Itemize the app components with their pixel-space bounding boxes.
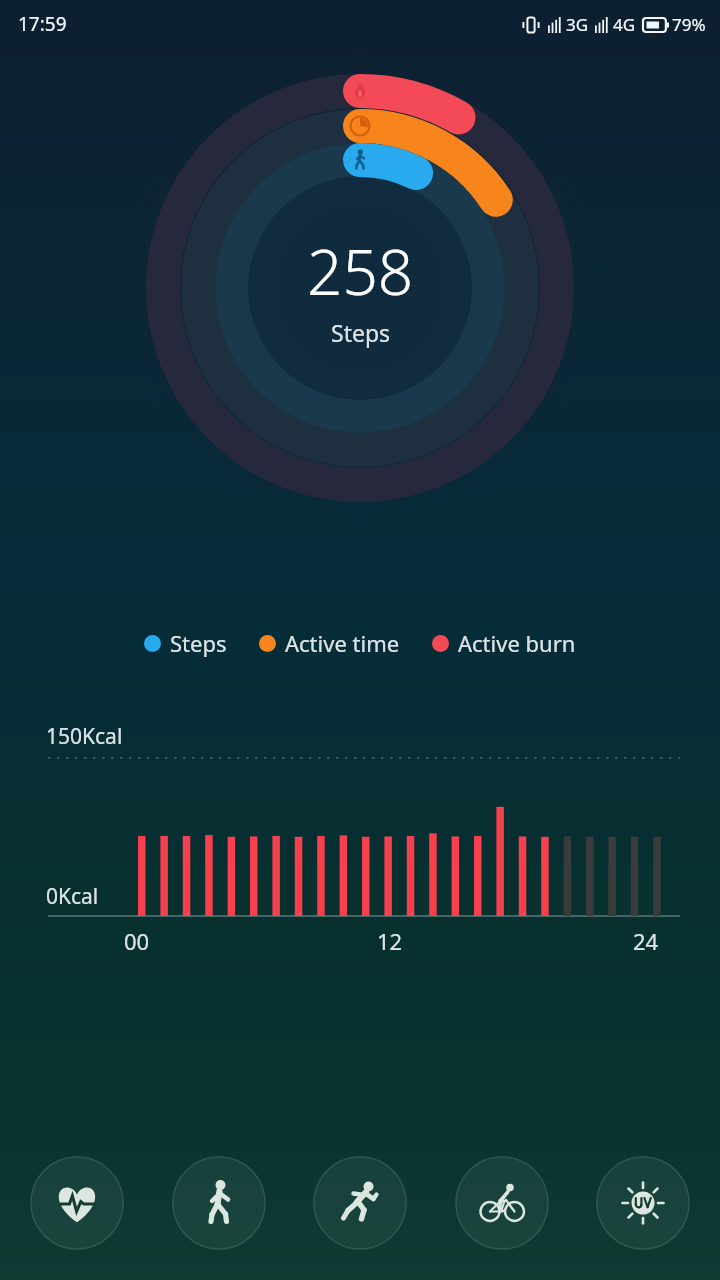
staticText: 258 bbox=[307, 229, 414, 313]
staticText: 150Kcal bbox=[46, 722, 123, 751]
staticText: 12 bbox=[377, 926, 403, 956]
staticText: Active time bbox=[285, 628, 400, 658]
button[interactable]: Active burn bbox=[432, 628, 576, 658]
button[interactable]: Running bbox=[313, 1156, 407, 1250]
button[interactable]: Steps bbox=[144, 628, 227, 658]
button[interactable]: Activity rings, 258 steps bbox=[120, 48, 600, 528]
staticText: 00 bbox=[124, 926, 150, 956]
button[interactable]: Walking bbox=[172, 1156, 266, 1250]
staticText: 0Kcal bbox=[46, 882, 99, 911]
button[interactable]: UV index bbox=[596, 1156, 690, 1250]
staticText: Active burn bbox=[458, 628, 576, 658]
button[interactable]: Heart rate bbox=[30, 1156, 124, 1250]
staticText: 79% bbox=[672, 13, 706, 36]
button[interactable]: Cycling bbox=[455, 1156, 549, 1250]
staticText: Steps bbox=[331, 317, 391, 348]
staticText: 4G bbox=[613, 13, 636, 36]
staticText: 3G bbox=[566, 13, 589, 36]
button[interactable]: Active time bbox=[259, 628, 400, 658]
staticText: Steps bbox=[170, 628, 227, 658]
staticText: 24 bbox=[633, 926, 659, 956]
staticText: 17:59 bbox=[18, 11, 67, 37]
